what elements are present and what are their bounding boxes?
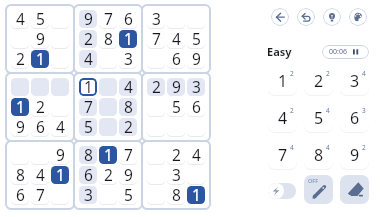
button[interactable]: 2 [11,50,29,68]
button[interactable] [51,78,69,96]
button[interactable]: Back [271,8,289,26]
button[interactable]: 6 [79,166,97,184]
button[interactable]: 7 [99,10,117,28]
button[interactable]: 1 [268,66,297,95]
button[interactable]: 9 [119,166,137,184]
button[interactable] [99,118,117,136]
button[interactable]: 7 [79,98,97,116]
button[interactable]: 5 [187,30,205,48]
button[interactable]: 3 [119,50,137,68]
button[interactable]: 5 [304,103,333,132]
button[interactable]: 4 [11,10,29,28]
button[interactable]: 8 [304,140,333,169]
button[interactable]: 3 [147,10,165,28]
button[interactable]: 4 [268,103,297,132]
button[interactable]: 4 [51,118,69,136]
button[interactable]: 8 [11,166,29,184]
button[interactable]: 9 [31,30,49,48]
button[interactable]: 5 [31,10,49,28]
button[interactable]: 7 [147,30,165,48]
button[interactable]: 9 [187,50,205,68]
button[interactable]: 2 [304,66,333,95]
button[interactable]: 7 [119,146,137,164]
button[interactable]: 8 [99,30,117,48]
button[interactable]: Undo [297,8,315,26]
button[interactable]: Erase [340,175,369,204]
button[interactable]: 4 [31,166,49,184]
button[interactable] [99,78,117,96]
button[interactable]: 6 [31,118,49,136]
button[interactable]: Auto check [268,183,296,199]
button[interactable]: 2 [147,78,165,96]
button[interactable]: 3 [340,66,369,95]
button[interactable]: 4 [79,50,97,68]
button[interactable]: 7 [31,186,49,204]
button[interactable]: 6 [11,186,29,204]
button[interactable]: 6 [340,103,369,132]
button[interactable]: 9 [167,78,185,96]
button[interactable]: 4 [167,30,185,48]
button[interactable]: 3 [167,166,185,184]
button[interactable]: 3 [187,78,205,96]
staticText: 00:06 [329,47,347,57]
button[interactable] [99,98,117,116]
button[interactable] [11,78,29,96]
button[interactable]: 6 [187,98,205,116]
button[interactable]: Hint [323,8,341,26]
button[interactable]: 1 [99,146,117,164]
button[interactable]: 2 [99,166,117,184]
button[interactable]: 8 [79,146,97,164]
button[interactable]: 2 [79,30,97,48]
button[interactable]: 7 [268,140,297,169]
button[interactable]: 1 [51,166,69,184]
button[interactable]: 5 [167,98,185,116]
button[interactable]: 1 [79,78,97,96]
button[interactable]: 1 [187,186,205,204]
button[interactable]: 4 [119,78,137,96]
button[interactable]: 2 [167,146,185,164]
button[interactable]: 5 [119,186,137,204]
button[interactable]: 4 [187,146,205,164]
button[interactable]: 8 [167,186,185,204]
staticText: 1 [16,98,25,114]
button[interactable]: 9 [79,10,97,28]
button[interactable]: 9 [11,118,29,136]
button[interactable]: 9 [340,140,369,169]
button[interactable]: 2 [31,98,49,116]
button[interactable]: 00:06 [322,45,369,59]
button[interactable]: 8 [119,98,137,116]
button[interactable]: 2 [119,118,137,136]
button[interactable]: 3 [79,186,97,204]
button[interactable]: 6 [167,50,185,68]
button[interactable]: 9 [51,146,69,164]
button[interactable]: 1 [31,50,49,68]
button[interactable] [31,78,49,96]
button[interactable]: 1 [11,98,29,116]
button[interactable]: 5 [79,118,97,136]
button[interactable]: 1 [119,30,137,48]
button[interactable]: Theme [349,8,367,26]
button[interactable]: Notes [304,175,333,204]
button[interactable]: 6 [119,10,137,28]
